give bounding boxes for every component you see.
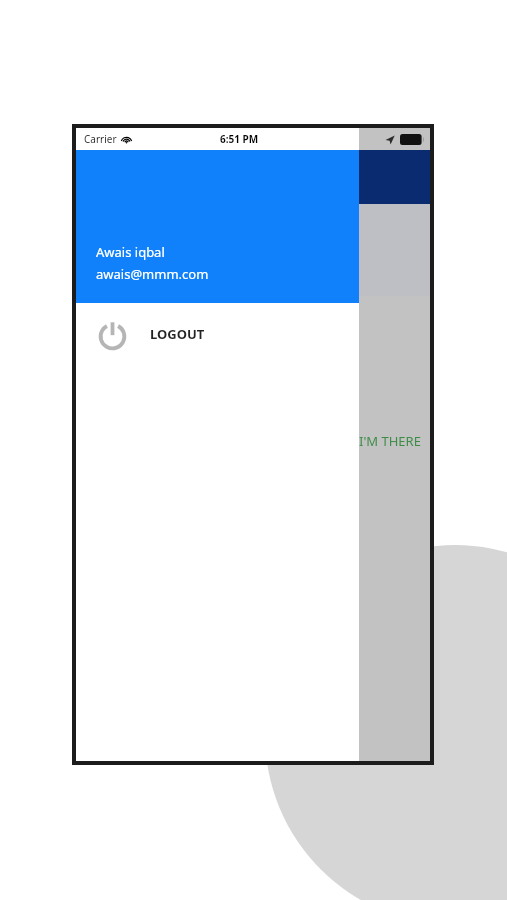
staticText: Carrier bbox=[84, 132, 117, 146]
button[interactable]: Logout bbox=[76, 303, 359, 365]
staticText: 6:51 PM bbox=[220, 132, 259, 146]
button[interactable]: I'M THERE bbox=[359, 432, 430, 450]
staticText: Awais iqbal bbox=[96, 243, 165, 261]
staticText: awais@mmm.com bbox=[96, 265, 209, 283]
staticText: LOGOUT bbox=[150, 325, 205, 343]
other: Logout bbox=[96, 318, 129, 351]
